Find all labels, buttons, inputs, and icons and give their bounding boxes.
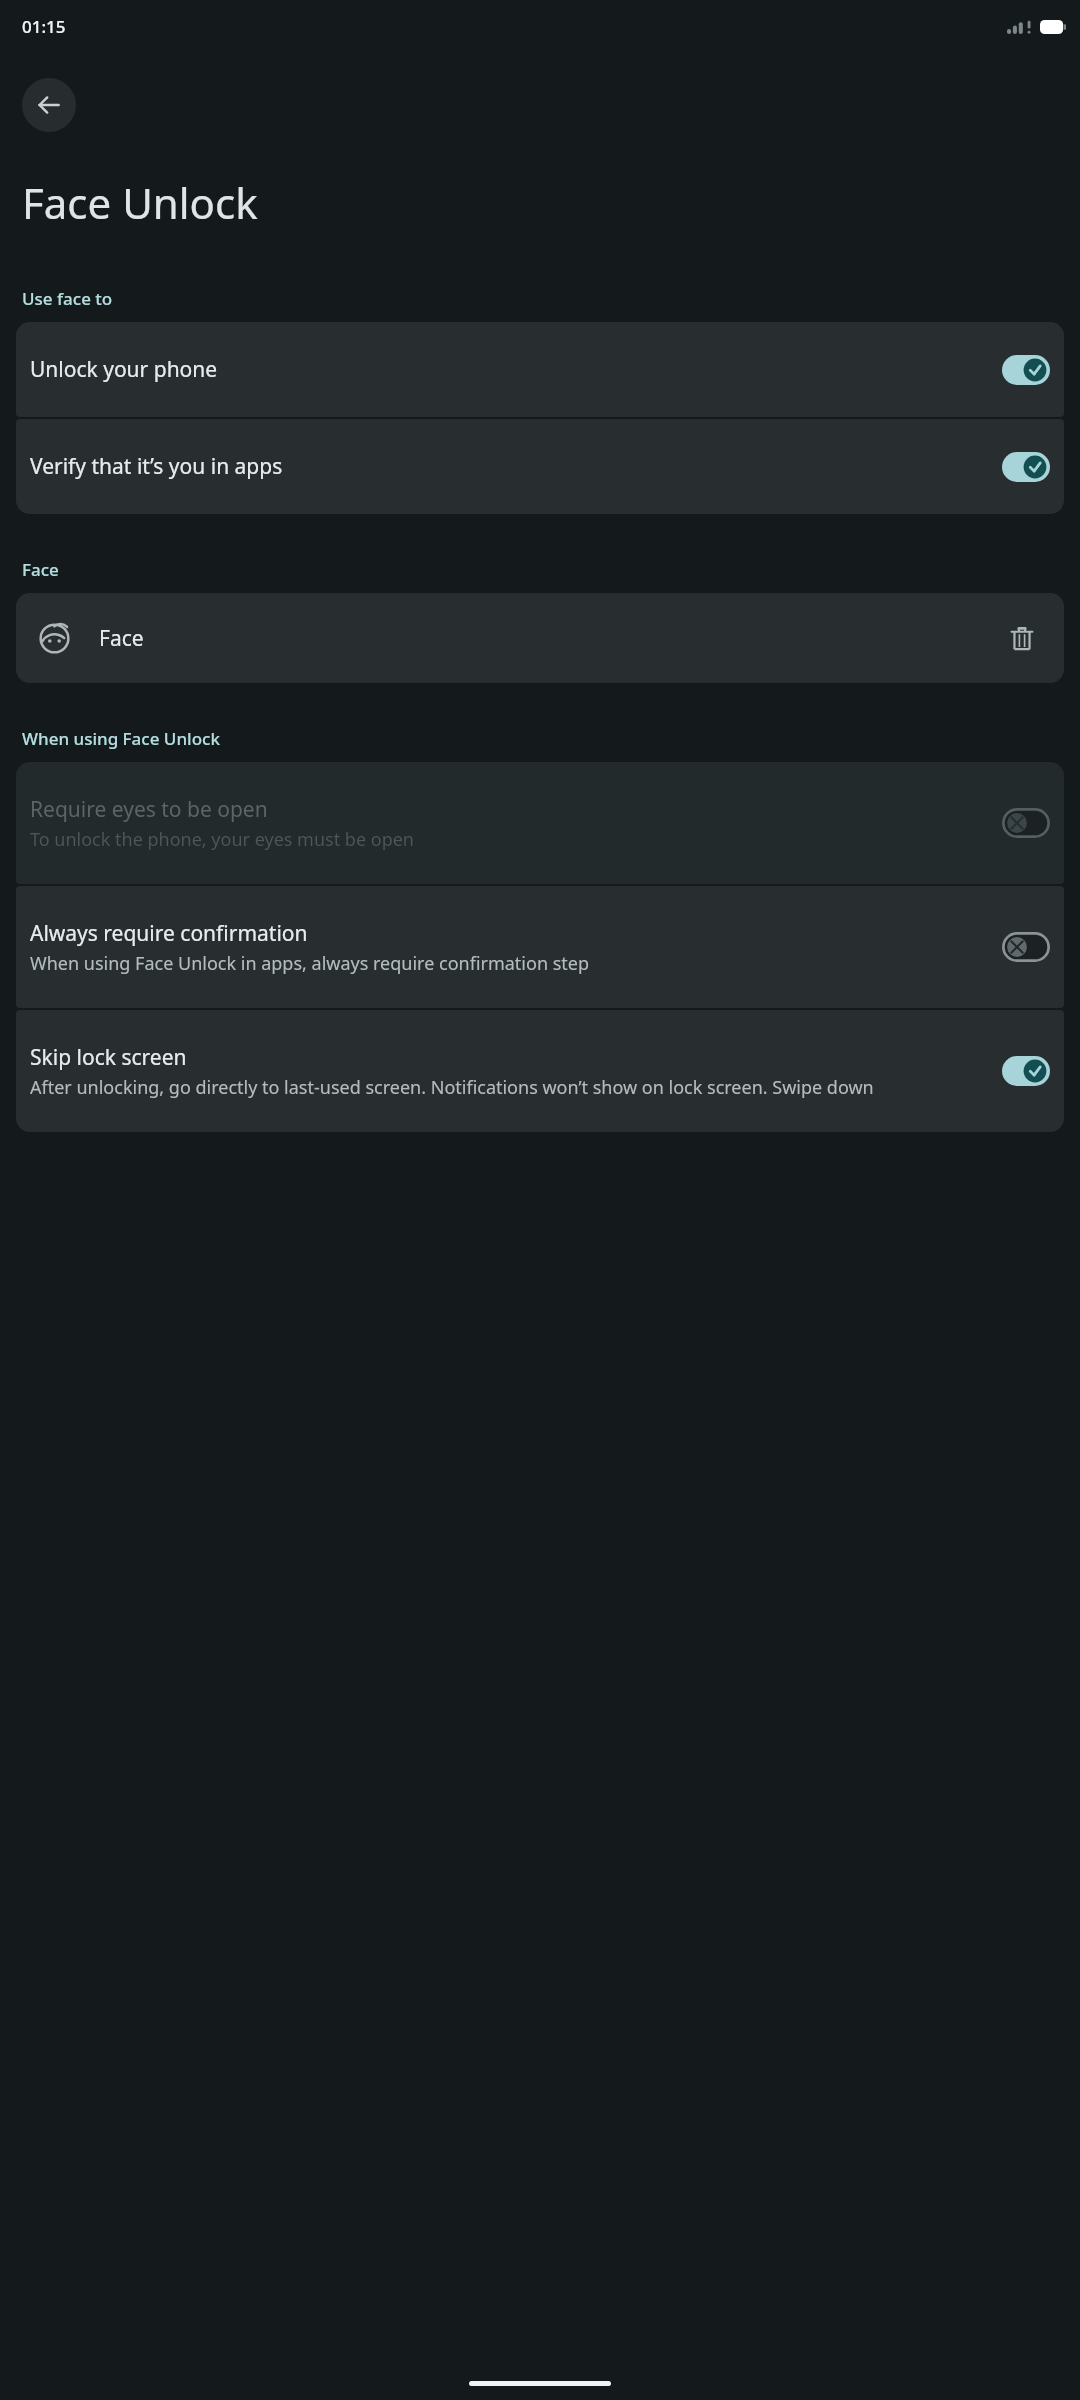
staticText: 01:15 (22, 15, 66, 38)
staticText: Unlock your phone (30, 355, 218, 384)
button[interactable]: Delete face (1002, 618, 1042, 658)
staticText: Face Unlock (22, 174, 258, 231)
staticText: Face (22, 558, 59, 581)
staticText: After unlocking, go directly to last-use… (30, 1075, 874, 1100)
staticText: When using Face Unlock in apps, always r… (30, 951, 590, 976)
button[interactable]: Off (1002, 808, 1050, 838)
staticText: When using Face Unlock (22, 727, 220, 750)
button[interactable]: On (1002, 355, 1050, 385)
button[interactable]: Unlock your phone (16, 322, 1064, 417)
button[interactable]: Always require confirmation (16, 886, 1064, 1008)
staticText: To unlock the phone, your eyes must be o… (30, 827, 414, 852)
staticText: Skip lock screen (30, 1043, 187, 1072)
staticText: Use face to (22, 287, 113, 310)
button[interactable]: Back (22, 78, 76, 132)
staticText: Always require confirmation (30, 919, 308, 948)
button[interactable]: Require eyes to be open (16, 762, 1064, 884)
staticText: Verify that it’s you in apps (30, 452, 283, 481)
button[interactable]: Skip lock screen (16, 1010, 1064, 1132)
button[interactable]: Verify that it’s you in apps (16, 419, 1064, 514)
button[interactable]: Off (1002, 932, 1050, 962)
button[interactable]: On (1002, 452, 1050, 482)
staticText: Require eyes to be open (30, 795, 268, 824)
button[interactable]: On (1002, 1056, 1050, 1086)
staticText: Face (99, 624, 1002, 653)
button[interactable]: Face (16, 593, 1064, 683)
